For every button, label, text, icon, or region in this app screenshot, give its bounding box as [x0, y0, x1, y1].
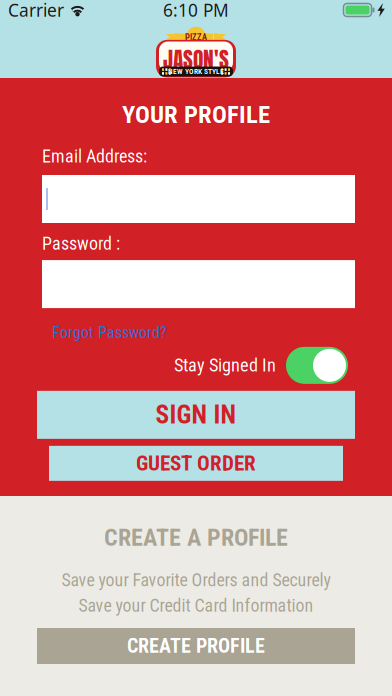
staticText: Save your Credit Card Information	[78, 595, 313, 616]
staticText: Forgot Password?	[52, 323, 167, 342]
staticText: GUEST ORDER	[136, 451, 256, 476]
staticText: JASON'S	[163, 44, 229, 76]
staticText: YOUR PROFILE	[122, 100, 270, 129]
staticText: CREATE PROFILE	[127, 634, 265, 658]
staticText: Save your Favorite Orders and Securely	[61, 570, 330, 591]
staticText: Stay Signed In	[174, 355, 276, 376]
button[interactable]: CREATE PROFILE	[37, 628, 355, 664]
button[interactable]: SIGN IN	[37, 391, 355, 439]
staticText: PIZZA	[185, 32, 207, 42]
staticText: 6:10 PM	[163, 0, 229, 21]
button[interactable]: Forgot Password?	[52, 323, 167, 342]
staticText: Email Address:	[42, 146, 147, 167]
staticText: SIGN IN	[155, 400, 236, 430]
staticText: CREATE A PROFILE	[104, 524, 288, 552]
button[interactable]: GUEST ORDER	[49, 446, 343, 481]
staticText: NEW YORK STYLE	[168, 67, 224, 76]
button[interactable]: Stay Signed In	[286, 347, 348, 384]
staticText: Password :	[42, 233, 120, 254]
staticText: Carrier	[8, 0, 64, 21]
